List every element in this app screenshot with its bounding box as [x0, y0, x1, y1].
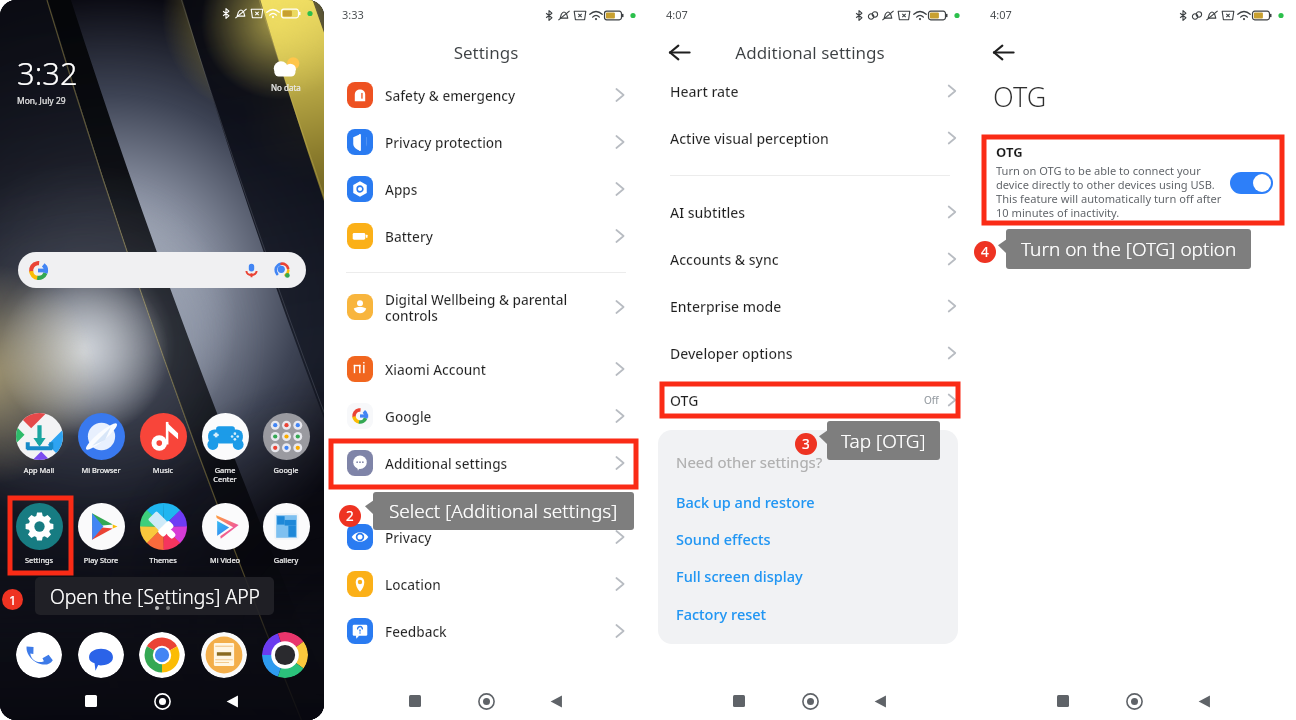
button[interactable]: Digital Wellbeing & parental controls	[324, 286, 648, 328]
button[interactable]: Developer options	[648, 341, 972, 365]
button[interactable]: Browser	[262, 632, 308, 678]
staticText: Tap [OTG]	[841, 428, 926, 454]
staticText: Digital Wellbeing & parental controls	[385, 290, 612, 325]
staticText: Gallery	[256, 555, 316, 565]
staticText: Music	[132, 465, 194, 475]
button[interactable]: Back up and restore	[676, 492, 815, 512]
button[interactable]: Back	[992, 41, 1015, 64]
staticText: Off	[924, 393, 939, 407]
button[interactable]: Recents	[722, 686, 756, 716]
button[interactable]: AI subtitles	[648, 200, 972, 224]
button[interactable]: Enterprise mode	[648, 294, 972, 318]
staticText: Themes	[132, 555, 194, 565]
button[interactable]: Chrome	[139, 632, 185, 678]
button[interactable]: Mi Video	[194, 503, 256, 565]
staticText: Additional settings	[648, 41, 972, 64]
button[interactable]: Battery	[324, 223, 648, 249]
staticText: Need other settings?	[676, 452, 823, 472]
staticText: App Mall	[8, 465, 70, 475]
button[interactable]: Safety & emergency	[324, 82, 648, 108]
button[interactable]: Additional settings	[324, 450, 648, 476]
staticText: Turn on the [OTG] option	[1021, 236, 1237, 262]
staticText: 2	[346, 507, 354, 525]
button[interactable]: Recents	[1046, 686, 1080, 716]
button[interactable]: Mi Browser	[70, 413, 132, 475]
button[interactable]: Sound effects	[676, 529, 771, 549]
button[interactable]: Back	[539, 686, 573, 716]
staticText: Google	[385, 407, 612, 426]
button[interactable]: Settings	[8, 503, 70, 565]
button[interactable]: Messages	[78, 632, 124, 678]
staticText: OTG	[993, 78, 1047, 115]
staticText: No data	[271, 82, 301, 93]
button[interactable]: Location	[324, 571, 648, 597]
staticText: Settings	[324, 41, 648, 64]
button[interactable]: OTG	[985, 138, 1283, 224]
button[interactable]: Privacy protection	[324, 129, 648, 155]
staticText: 4	[981, 243, 989, 261]
staticText: Mon, July 29	[17, 95, 66, 107]
button[interactable]: Feedback	[324, 618, 648, 644]
staticText: Apps	[385, 180, 612, 199]
staticText: Privacy	[385, 528, 612, 547]
staticText: Xiaomi Account	[385, 360, 612, 379]
staticText: Safety & emergency	[385, 86, 612, 105]
staticText: 3:33	[342, 7, 364, 22]
staticText: 3	[802, 435, 810, 453]
button[interactable]: Back	[668, 41, 691, 64]
staticText: Active visual perception	[670, 129, 829, 148]
staticText: Developer options	[670, 344, 793, 363]
button[interactable]: Music	[132, 413, 194, 475]
staticText: Enterprise mode	[670, 297, 782, 316]
button[interactable]: Recents	[74, 686, 108, 716]
button[interactable]: Game Center	[194, 413, 256, 485]
button[interactable]: Apps	[324, 176, 648, 202]
button[interactable]: Factory reset	[676, 604, 767, 624]
staticText: Privacy protection	[385, 133, 612, 152]
staticText: Feedback	[385, 622, 612, 641]
button[interactable]: Privacy	[324, 524, 648, 550]
staticText: Mi Video	[194, 555, 256, 565]
button[interactable]: Home	[145, 686, 179, 716]
staticText: OTG	[670, 391, 699, 410]
staticText: Mi Browser	[70, 465, 132, 475]
staticText: Select [Additional settings]	[389, 498, 618, 524]
button[interactable]: Back	[1187, 686, 1221, 716]
button[interactable]: Recents	[398, 686, 432, 716]
button[interactable]: Google	[256, 413, 316, 475]
button[interactable]: Home	[1117, 686, 1151, 716]
button[interactable]: Search	[18, 252, 306, 288]
staticText: 4:07	[666, 7, 688, 22]
button[interactable]: Google	[324, 403, 648, 429]
staticText: AI subtitles	[670, 203, 746, 222]
button[interactable]: Cleaner	[201, 632, 247, 678]
staticText: Turn on OTG to be able to connect your d…	[996, 163, 1222, 220]
staticText: Location	[385, 575, 612, 594]
staticText: Play Store	[70, 555, 132, 565]
staticText: Battery	[385, 227, 612, 246]
button[interactable]: Themes	[132, 503, 194, 565]
button[interactable]: Xiaomi Account	[324, 356, 648, 382]
button[interactable]: Phone	[16, 632, 62, 678]
button[interactable]: Full screen display	[676, 566, 803, 586]
button[interactable]: Home	[793, 686, 827, 716]
button[interactable]: Active visual perception	[648, 126, 972, 150]
button[interactable]: OTG	[648, 388, 972, 412]
button[interactable]: Gallery	[256, 503, 316, 565]
button[interactable]: Back	[215, 686, 249, 716]
staticText: Additional settings	[385, 454, 612, 473]
staticText: Open the [Settings] APP	[50, 583, 260, 609]
button[interactable]: Accounts & sync	[648, 247, 972, 271]
button[interactable]: Back	[863, 686, 897, 716]
staticText: 3:32	[17, 52, 78, 94]
staticText: Google	[256, 465, 316, 475]
button[interactable]: Play Store	[70, 503, 132, 565]
staticText: 1	[9, 591, 17, 609]
staticText: 4:07	[990, 7, 1012, 22]
button[interactable]: Heart rate	[648, 79, 972, 103]
staticText: Heart rate	[670, 82, 739, 101]
button[interactable]: Home	[469, 686, 503, 716]
staticText: OTG	[996, 143, 1023, 161]
staticText: Accounts & sync	[670, 250, 779, 269]
button[interactable]: App Mall	[8, 413, 70, 475]
